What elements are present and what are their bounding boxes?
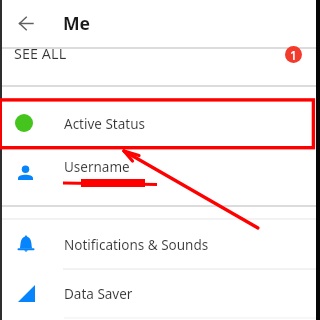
button[interactable]: Data Saver — [0, 269, 320, 320]
staticText: 1 — [290, 47, 297, 63]
button[interactable]: Active Status — [0, 86, 320, 148]
button[interactable]: SEE ALL — [0, 48, 320, 85]
button[interactable]: Back — [9, 7, 42, 40]
button[interactable]: Notifications & Sounds — [0, 220, 320, 269]
staticText: Notifications & Sounds — [64, 236, 209, 254]
button[interactable]: 1 notification — [285, 46, 302, 63]
button[interactable]: Username — [0, 148, 320, 205]
staticText: Username — [64, 158, 130, 176]
staticText: Me — [63, 11, 91, 35]
staticText: Active Status — [64, 115, 145, 133]
staticText: Data Saver — [64, 285, 133, 303]
staticText: SEE ALL — [14, 44, 67, 63]
